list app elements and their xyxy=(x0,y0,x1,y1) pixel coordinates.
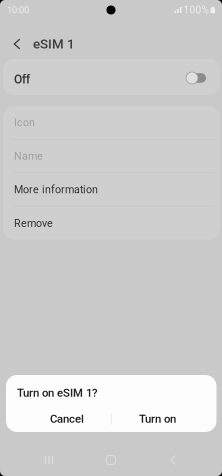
button[interactable]: Cancel xyxy=(23,411,111,427)
staticText: Cancel xyxy=(50,412,84,426)
staticText: eSIM 1 xyxy=(33,36,75,52)
button[interactable]: Off xyxy=(0,59,222,95)
button[interactable]: Icon xyxy=(3,106,220,139)
staticText: Turn on xyxy=(139,412,176,426)
staticText: 10:00 xyxy=(7,4,29,15)
staticText: More information xyxy=(14,183,98,196)
staticText: Icon xyxy=(14,116,35,129)
staticText: Name xyxy=(14,150,43,162)
button[interactable]: Remove xyxy=(3,207,220,240)
button[interactable]: Name xyxy=(3,140,220,173)
staticText: Turn on eSIM 1? xyxy=(17,386,98,400)
staticText: Remove xyxy=(14,217,53,229)
staticText: 100% xyxy=(183,4,208,16)
button[interactable]: More information xyxy=(3,173,220,206)
button[interactable]: Turn on xyxy=(112,411,203,427)
staticText: Off xyxy=(14,72,30,87)
button[interactable]: Back xyxy=(6,29,28,59)
